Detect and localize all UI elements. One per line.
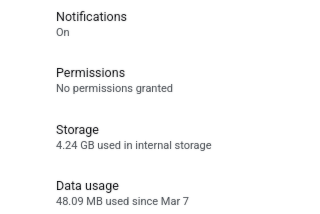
staticText: Permissions xyxy=(56,65,126,80)
button[interactable]: Permissions xyxy=(0,55,320,101)
button[interactable]: Notifications xyxy=(0,0,320,45)
staticText: No permissions granted xyxy=(56,82,174,95)
staticText: Notifications xyxy=(56,9,128,24)
button[interactable]: Data usage xyxy=(0,168,320,214)
staticText: Data usage xyxy=(56,178,119,193)
staticText: On xyxy=(56,26,70,39)
button[interactable]: Storage xyxy=(0,112,320,158)
staticText: Storage xyxy=(56,122,99,137)
staticText: 4.24 GB used in internal storage xyxy=(56,139,212,152)
staticText: 48.09 MB used since Mar 7 xyxy=(56,195,190,208)
